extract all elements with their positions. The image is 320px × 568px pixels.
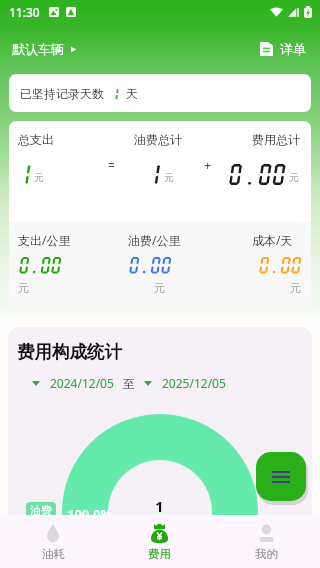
staticText: 元: [18, 281, 29, 295]
button[interactable]: 已坚持记录天数: [9, 74, 311, 112]
button[interactable]: Menu: [256, 452, 306, 501]
staticText: 元: [290, 281, 301, 295]
button[interactable]: 油耗: [0, 515, 106, 568]
staticText: 油费总计: [134, 132, 182, 147]
staticText: 元: [34, 171, 44, 184]
button[interactable]: 我的: [213, 515, 320, 568]
staticText: 油费/公里: [128, 232, 181, 248]
staticText: 天: [126, 86, 138, 101]
staticText: 油耗: [42, 547, 65, 561]
staticText: 支出/公里: [18, 232, 71, 248]
staticText: 成本/天: [252, 232, 293, 248]
staticText: 详单: [280, 41, 306, 57]
staticText: 至: [123, 376, 135, 391]
staticText: 总支出: [18, 132, 54, 147]
staticText: 元: [164, 171, 174, 184]
staticText: 2024/12/05: [50, 375, 114, 391]
staticText: 油费: [30, 503, 52, 517]
button[interactable]: 费用: [106, 515, 213, 568]
staticText: 费用: [148, 547, 171, 561]
staticText: 已坚持记录天数: [20, 86, 104, 101]
button[interactable]: 2024/12/05: [26, 371, 120, 395]
staticText: 元: [289, 171, 299, 184]
staticText: 1: [155, 496, 164, 516]
staticText: 默认车辆: [12, 41, 64, 57]
button[interactable]: 详单: [256, 35, 310, 63]
button[interactable]: 默认车辆: [8, 35, 81, 63]
staticText: 费用构成统计: [17, 341, 122, 363]
staticText: 2025/12/05: [162, 375, 226, 391]
staticText: =: [108, 157, 115, 173]
staticText: 我的: [255, 547, 278, 561]
staticText: 100.0%: [67, 505, 113, 523]
staticText: +: [204, 156, 212, 174]
button[interactable]: 2025/12/05: [138, 371, 232, 395]
staticText: 元: [154, 281, 165, 295]
staticText: 11:30: [9, 4, 40, 20]
staticText: 费用总计: [252, 132, 300, 147]
